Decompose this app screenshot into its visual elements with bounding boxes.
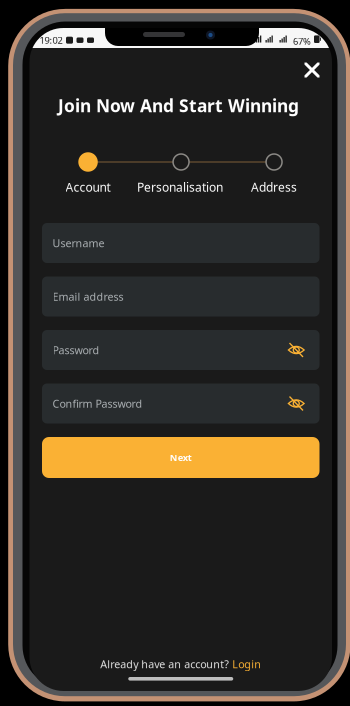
staticText: Confirm Password	[52, 396, 142, 411]
staticText: 67%	[293, 35, 311, 47]
staticText: Already have an account?	[100, 657, 232, 671]
staticText: Password	[52, 343, 99, 357]
button[interactable]: Login	[232, 657, 261, 671]
staticText: Address	[251, 179, 297, 195]
button[interactable]: Username	[42, 223, 319, 263]
staticText: Login	[232, 657, 261, 671]
staticText: Next	[170, 451, 192, 464]
staticText: 19:02	[39, 34, 62, 46]
staticText: Account	[65, 179, 110, 195]
staticText: Email address	[52, 289, 123, 304]
staticText: Username	[52, 236, 104, 250]
button[interactable]: Password	[42, 330, 319, 370]
button[interactable]: Close	[295, 55, 329, 85]
button[interactable]: Email address	[42, 276, 319, 316]
button[interactable]: Next	[42, 437, 319, 478]
button[interactable]: Confirm Password	[42, 383, 319, 423]
staticText: Join Now And Start Winning	[58, 94, 299, 117]
staticText: Personalisation	[137, 179, 223, 195]
